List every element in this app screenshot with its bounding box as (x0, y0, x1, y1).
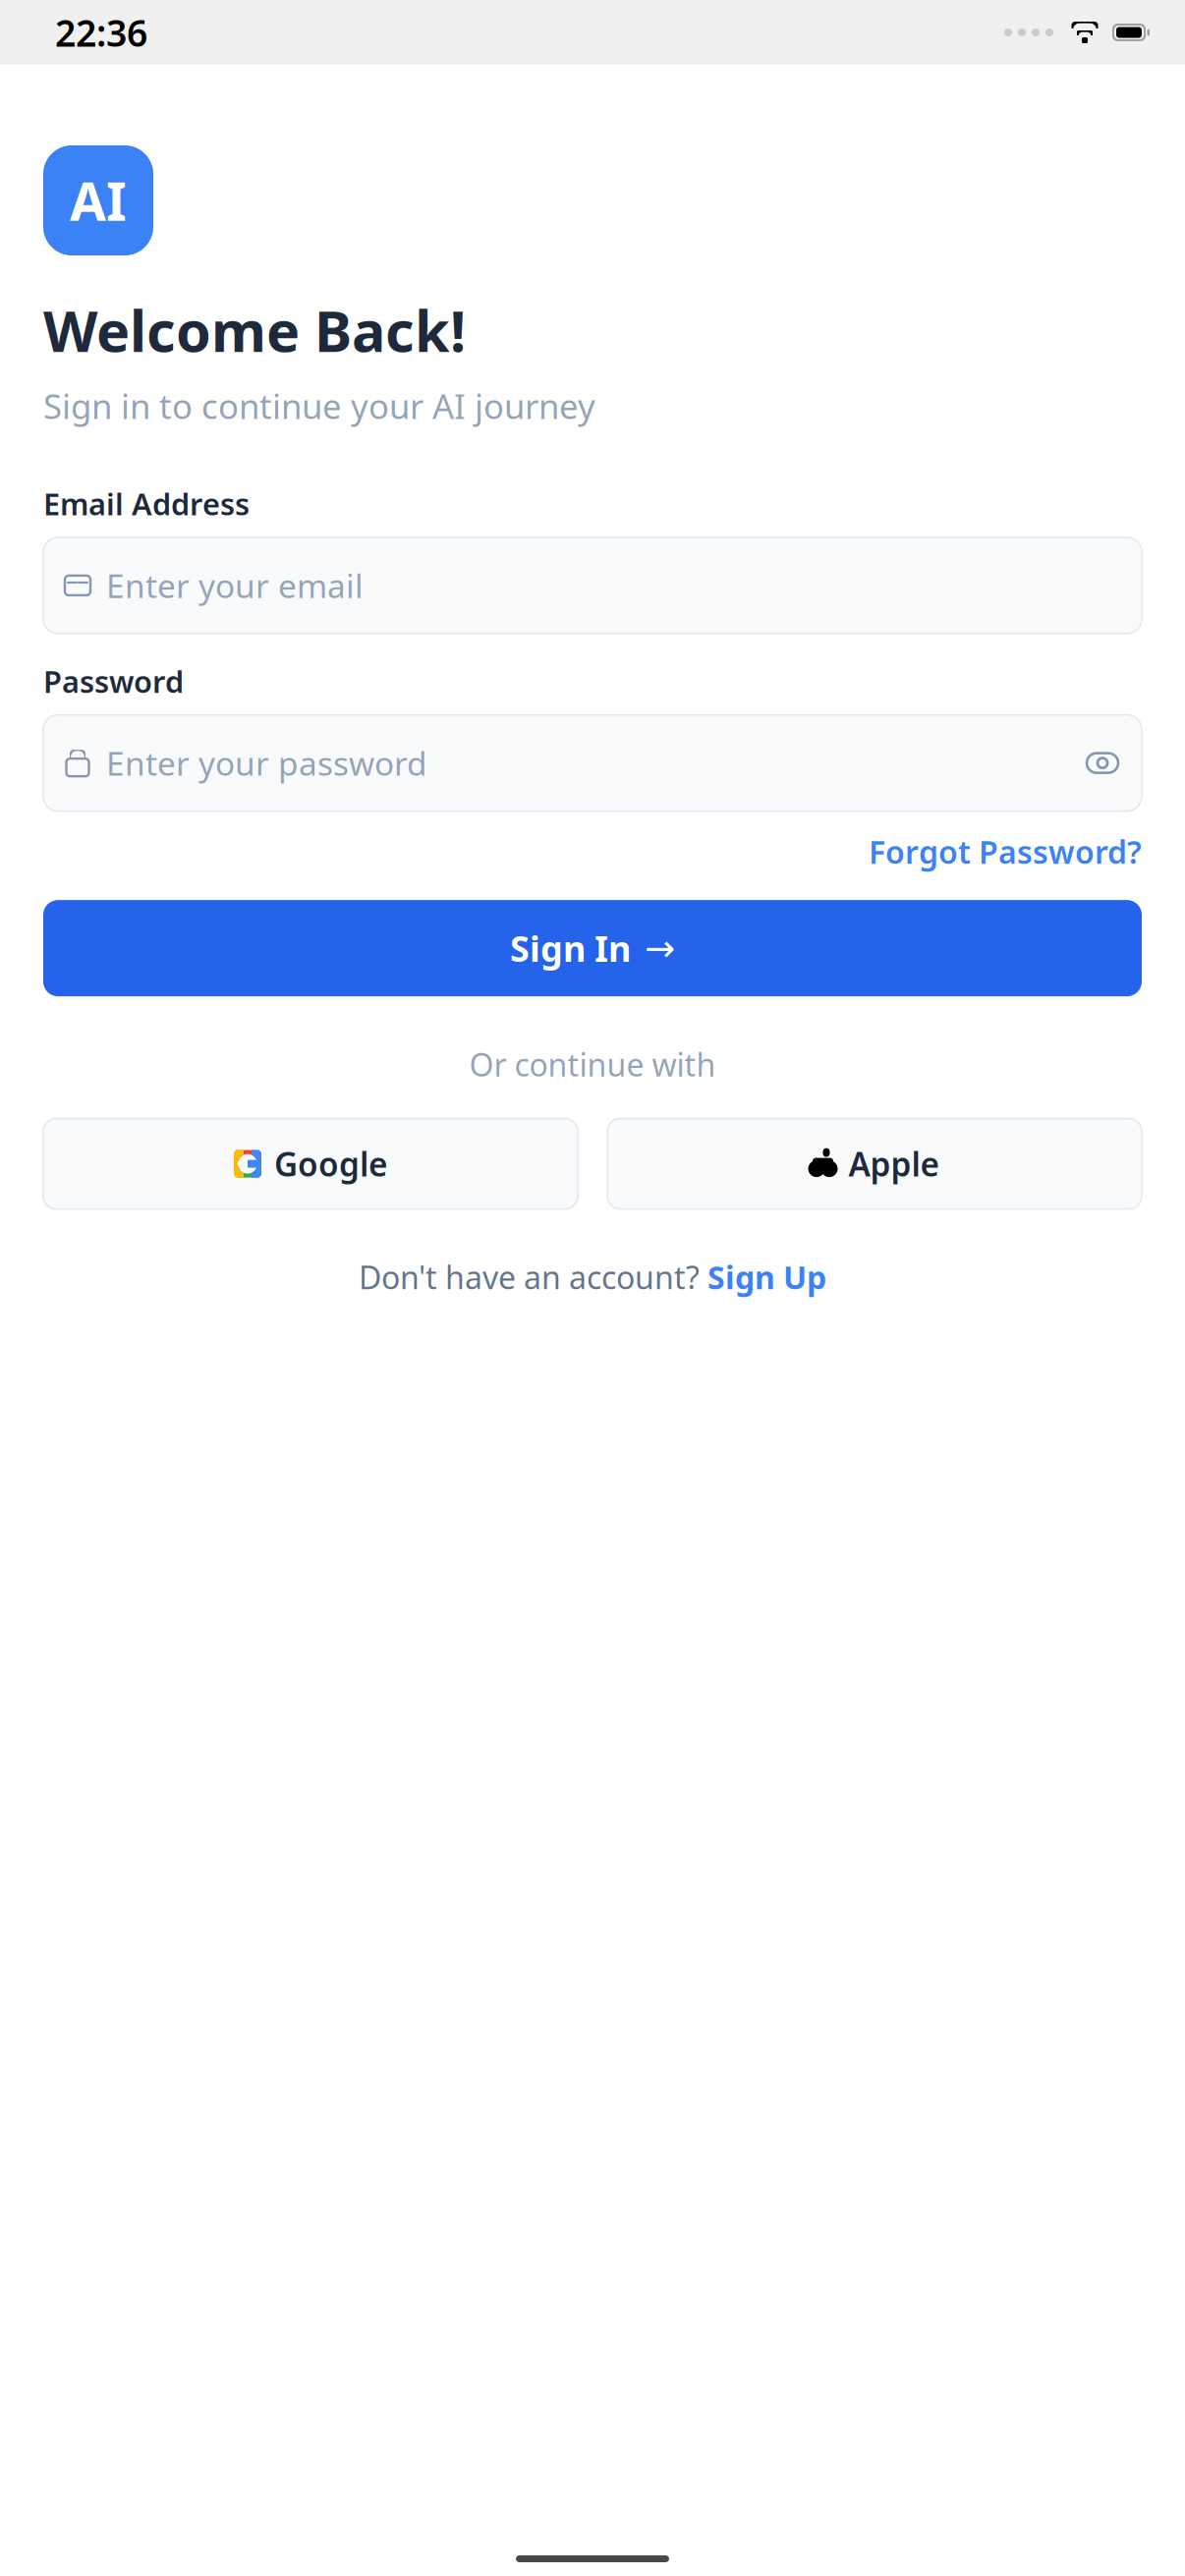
staticText: Don't have an account? (359, 1256, 700, 1298)
staticText: Welcome Back! (43, 293, 466, 368)
staticText: Enter your password (106, 741, 427, 785)
button[interactable]: Don't have an account? (43, 1250, 1142, 1304)
staticText: Password (43, 661, 184, 701)
staticText: Email Address (43, 484, 250, 524)
button[interactable]: Sign In (43, 900, 1142, 996)
button[interactable]: Google (43, 1119, 578, 1209)
staticText: AI (70, 166, 127, 235)
staticText: 22:36 (55, 8, 147, 57)
staticText: Forgot Password? (869, 831, 1142, 873)
staticText: Apple (848, 1142, 940, 1186)
staticText: → (645, 927, 675, 969)
button[interactable]: Forgot Password? (869, 821, 1142, 882)
staticText: Or continue with (469, 1043, 716, 1085)
staticText: Google (274, 1142, 388, 1186)
staticText: Enter your email (106, 564, 364, 607)
staticText: Sign in to continue your AI journey (43, 383, 595, 428)
button[interactable]: Show password (1079, 739, 1126, 787)
button[interactable]: Apple (607, 1119, 1142, 1209)
staticText: Sign In (510, 925, 631, 972)
staticText: Sign Up (707, 1256, 826, 1298)
